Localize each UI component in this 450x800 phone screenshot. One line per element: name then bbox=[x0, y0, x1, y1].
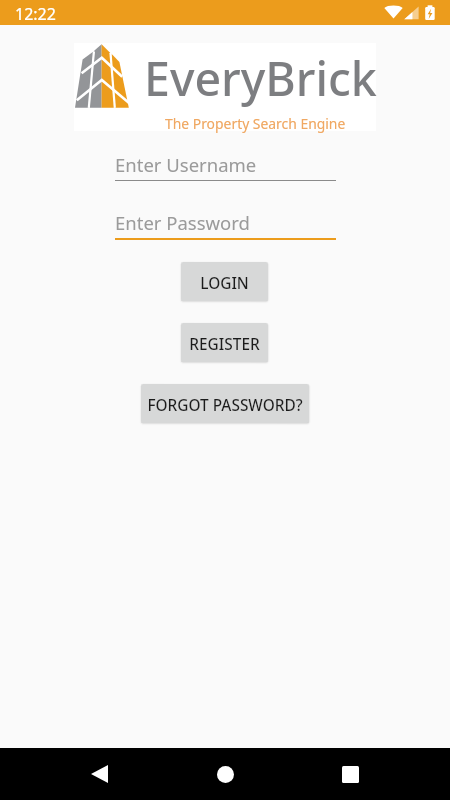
button[interactable]: Enter Password bbox=[115, 210, 336, 240]
staticText: LOGIN bbox=[200, 273, 249, 294]
button[interactable]: Recent apps bbox=[330, 754, 370, 794]
button[interactable]: Enter Username bbox=[115, 152, 336, 181]
staticText: Enter Username bbox=[115, 152, 257, 177]
staticText: 12:22 bbox=[15, 3, 56, 25]
button[interactable]: FORGOT PASSWORD? bbox=[141, 384, 309, 423]
button[interactable]: LOGIN bbox=[181, 262, 268, 301]
staticText: The Property Search Engine bbox=[165, 114, 346, 133]
button[interactable]: REGISTER bbox=[181, 323, 268, 362]
button[interactable]: Home bbox=[205, 754, 245, 794]
staticText: FORGOT PASSWORD? bbox=[147, 395, 303, 416]
staticText: Enter Password bbox=[115, 210, 250, 235]
button[interactable]: Back bbox=[79, 754, 119, 794]
staticText: REGISTER bbox=[189, 334, 260, 355]
staticText: EveryBrick bbox=[144, 46, 377, 109]
